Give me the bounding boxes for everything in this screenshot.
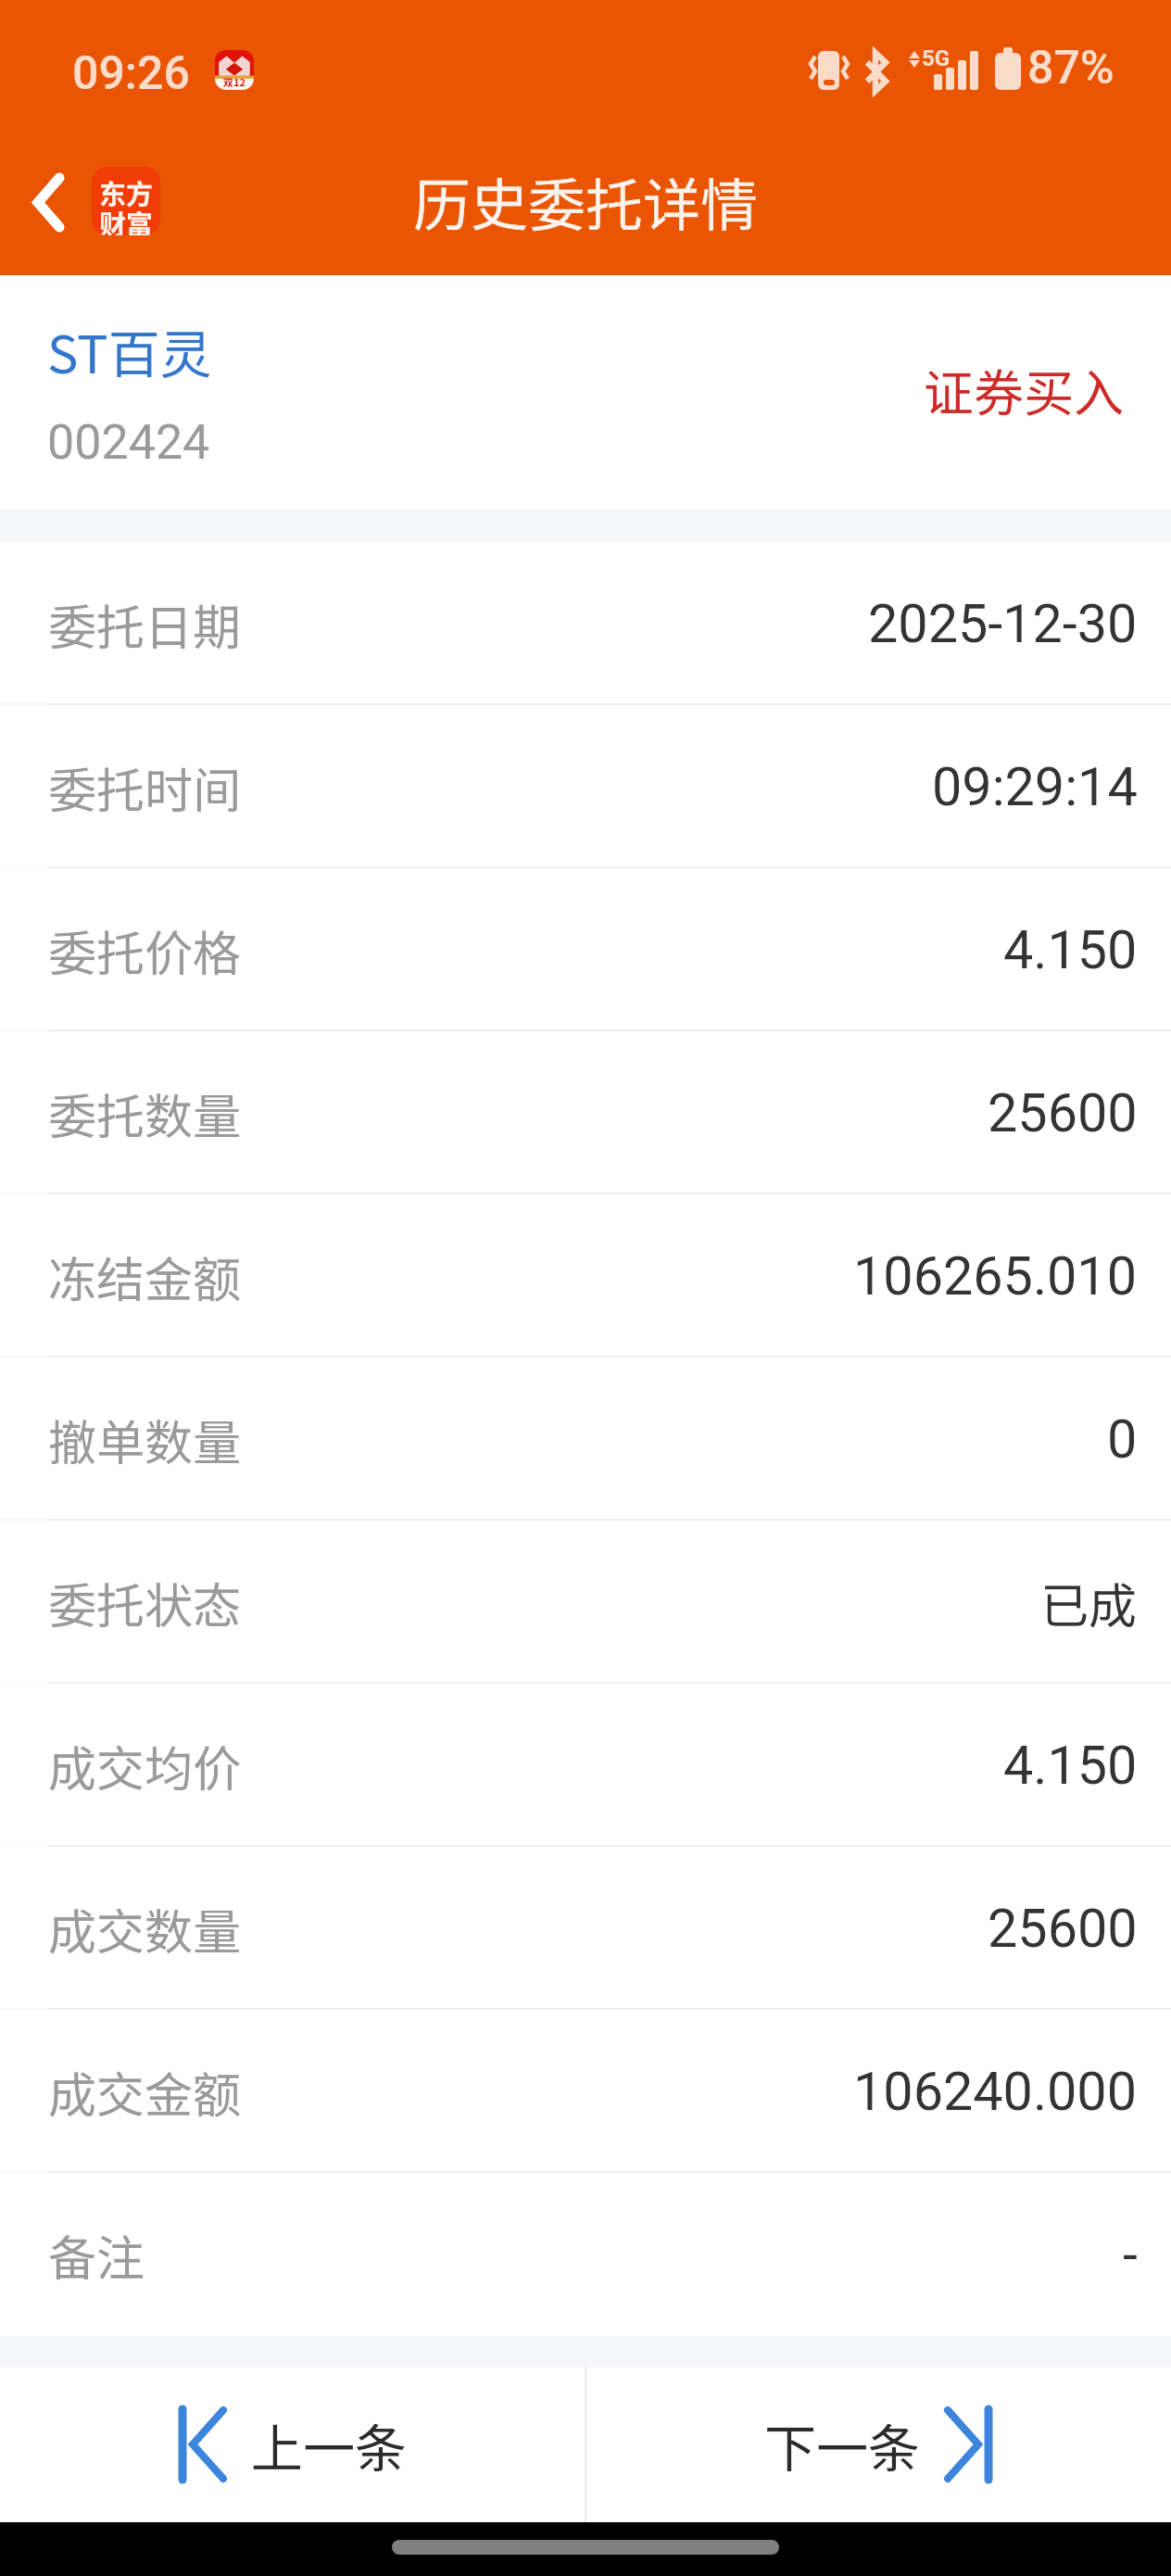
staticText: 成交金额: [48, 2057, 242, 2127]
staticText: 双12: [223, 74, 246, 89]
staticText: 106265.010: [853, 1245, 1138, 1307]
button[interactable]: 委托时间: [0, 705, 1171, 868]
staticText: 5G: [922, 45, 951, 71]
staticText: 2025-12-30: [868, 593, 1138, 655]
staticText: 备注: [48, 2220, 145, 2290]
button[interactable]: 备注: [0, 2173, 1171, 2336]
button[interactable]: 上一条: [0, 2367, 585, 2522]
staticText: 已成: [1040, 1568, 1138, 1637]
button[interactable]: 委托日期: [0, 542, 1171, 705]
staticText: 证券买入: [924, 353, 1124, 425]
staticText: 委托时间: [48, 752, 242, 822]
button[interactable]: 撤单数量: [0, 1357, 1171, 1521]
staticText: 09:26: [72, 46, 190, 101]
staticText: 87%: [1027, 41, 1114, 95]
staticText: 4.150: [1003, 1735, 1138, 1797]
staticText: 撤单数量: [48, 1405, 242, 1474]
button[interactable]: ST百灵: [0, 275, 1171, 509]
staticText: 成交数量: [48, 1894, 242, 1964]
staticText: 东方: [99, 172, 154, 211]
staticText: 25600: [988, 1082, 1138, 1144]
staticText: ST百灵: [47, 313, 212, 388]
staticText: 25600: [988, 1898, 1138, 1960]
staticText: 09:29:14: [932, 756, 1138, 818]
staticText: 成交均价: [48, 1731, 242, 1800]
staticText: 委托数量: [48, 1079, 242, 1148]
staticText: 106240.000: [853, 2061, 1138, 2123]
button[interactable]: 委托状态: [0, 1521, 1171, 1684]
staticText: 委托价格: [48, 915, 242, 985]
staticText: 财富: [99, 203, 154, 235]
staticText: 002424: [47, 414, 210, 471]
staticText: 冻结金额: [48, 1242, 242, 1311]
button[interactable]: 成交数量: [0, 1847, 1171, 2010]
staticText: 0: [1107, 1408, 1138, 1471]
staticText: -: [1123, 2224, 1138, 2286]
staticText: 委托日期: [48, 589, 242, 659]
staticText: 历史委托详情: [413, 159, 759, 243]
button[interactable]: 成交金额: [0, 2010, 1171, 2173]
staticText: 上一条: [251, 2407, 407, 2482]
button[interactable]: 成交均价: [0, 1684, 1171, 1847]
button[interactable]: 委托数量: [0, 1031, 1171, 1194]
button[interactable]: Back: [0, 132, 185, 270]
button[interactable]: 下一条: [586, 2367, 1171, 2522]
button[interactable]: 冻结金额: [0, 1194, 1171, 1357]
button[interactable]: 委托价格: [0, 868, 1171, 1031]
staticText: 下一条: [764, 2407, 920, 2482]
staticText: 4.150: [1003, 919, 1138, 981]
staticText: 委托状态: [48, 1568, 242, 1637]
